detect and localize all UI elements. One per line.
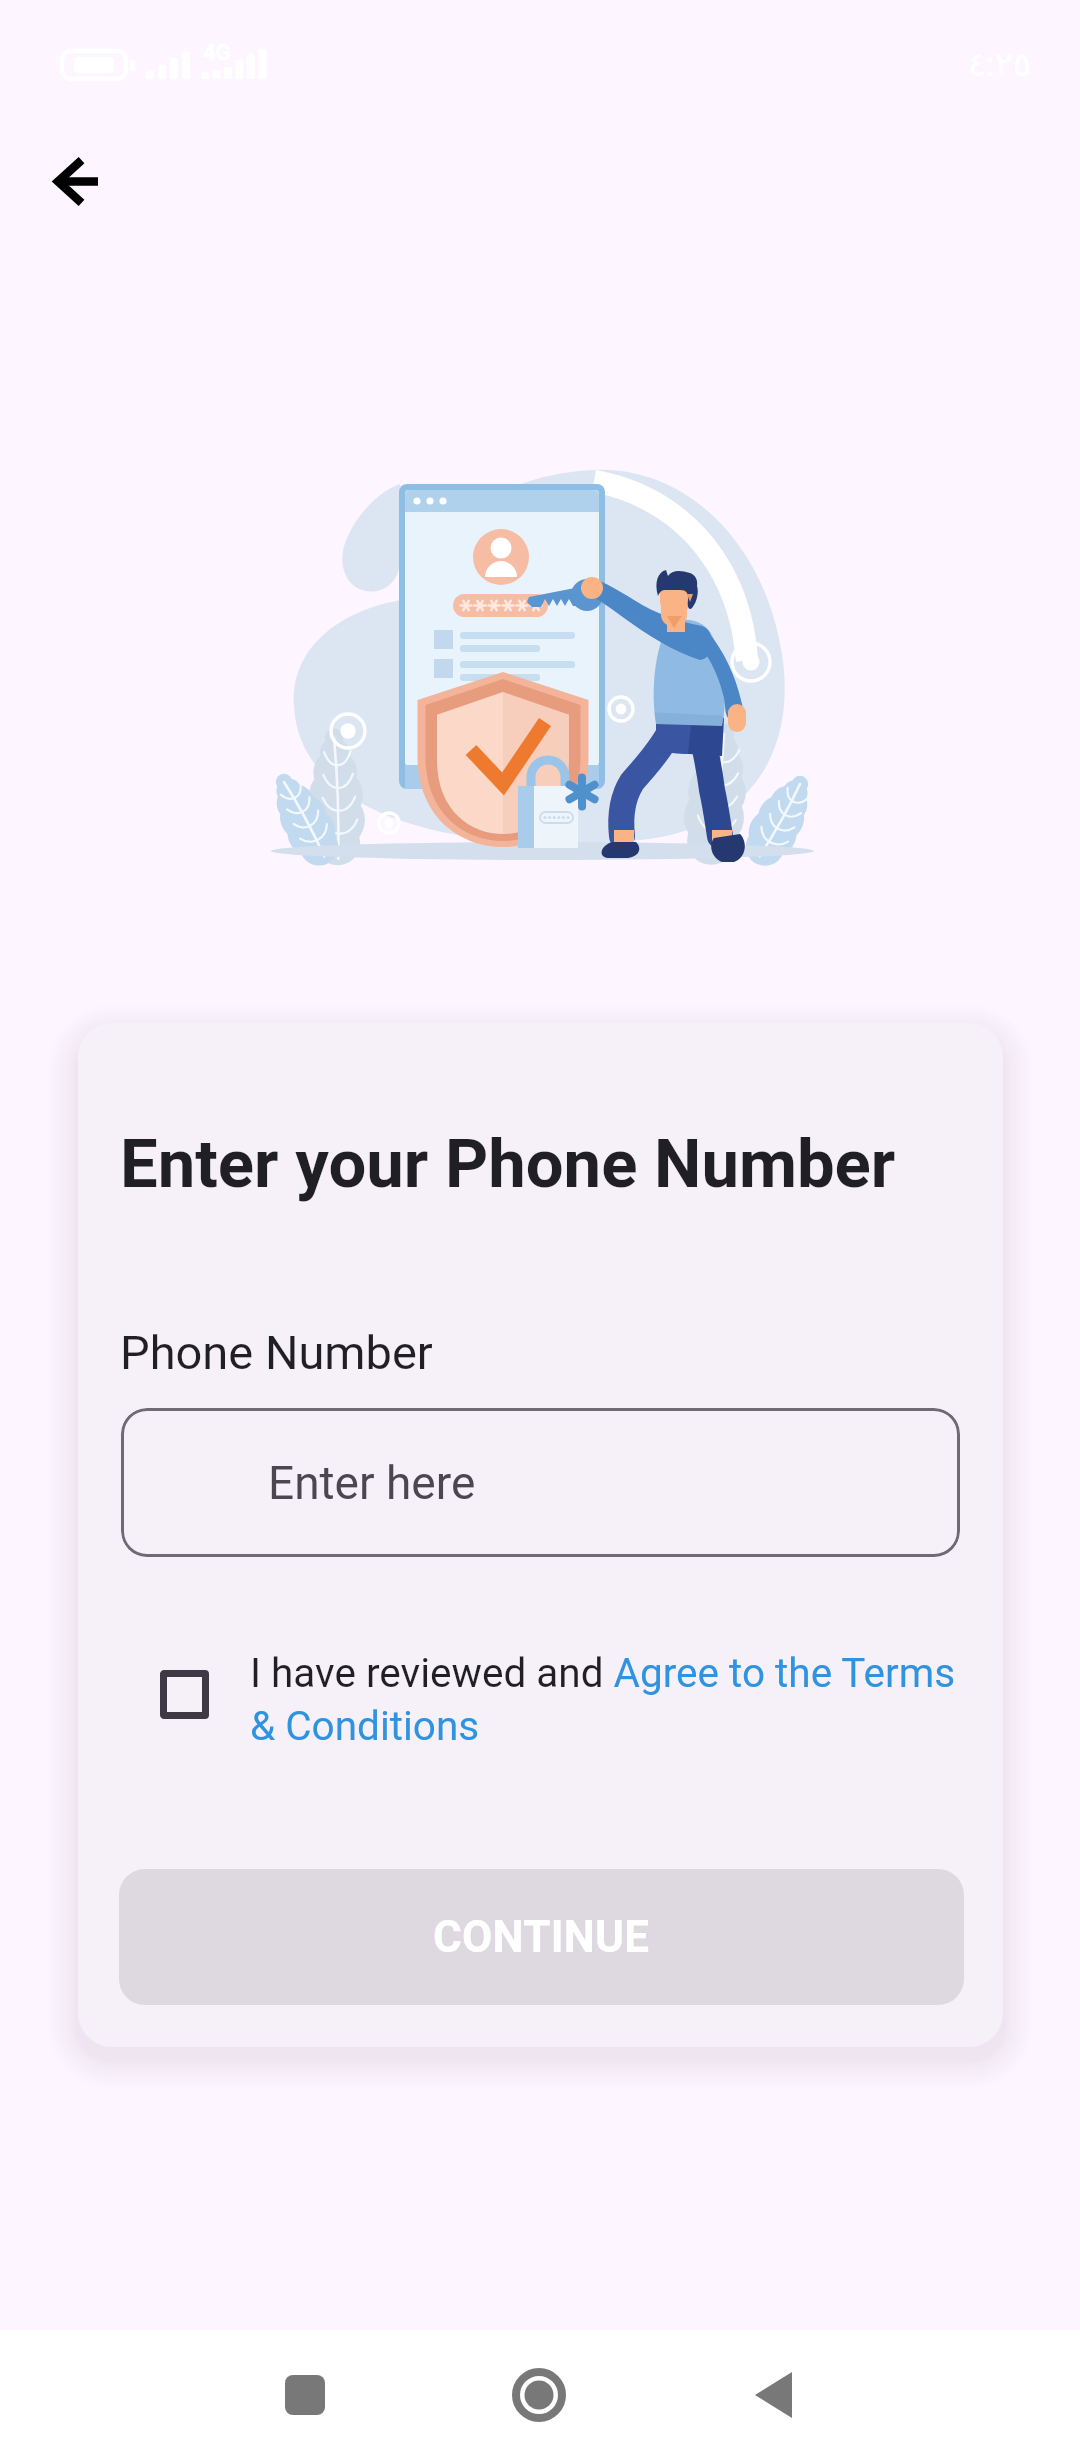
button[interactable]: Back (718, 2340, 828, 2450)
button[interactable]: I have reviewed and Agree to the Terms &… (160, 1649, 980, 1750)
button[interactable]: CONTINUE (119, 1869, 964, 2005)
staticText: I have reviewed and Agree to the Terms &… (250, 1649, 980, 1750)
staticText: Enter here (268, 1456, 476, 1510)
button[interactable]: Recent apps (250, 2340, 360, 2450)
button[interactable]: Back (27, 131, 127, 231)
staticText: CONTINUE (433, 1911, 650, 1963)
button[interactable]: Home (484, 2340, 594, 2450)
staticText: ٤:٢٥ (968, 44, 1032, 84)
button[interactable]: Enter here (121, 1408, 960, 1557)
staticText: Phone Number (120, 1325, 433, 1380)
staticText: Enter your Phone Number (120, 1125, 896, 1204)
staticText: 4G (203, 40, 231, 66)
